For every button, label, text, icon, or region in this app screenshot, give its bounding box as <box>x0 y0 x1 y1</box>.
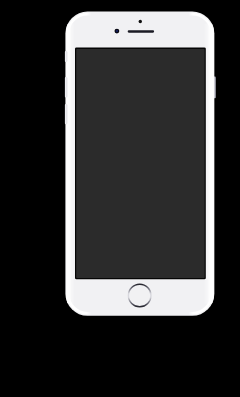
button[interactable]: Power button <box>210 76 217 98</box>
button[interactable]: Ring silent switch <box>62 51 69 63</box>
button[interactable]: Volume down <box>62 104 69 125</box>
button[interactable]: Volume up <box>62 77 69 98</box>
button[interactable]: Home button <box>128 284 152 308</box>
